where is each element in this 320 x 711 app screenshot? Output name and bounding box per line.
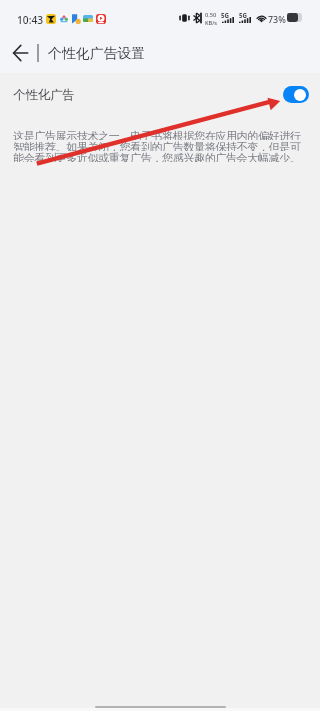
button[interactable]: Back [7, 39, 35, 67]
staticText: 个性化广告 [13, 87, 75, 103]
button[interactable]: Personalized ads switch [283, 86, 309, 103]
staticText: 73% [268, 13, 286, 25]
staticText: 个性化广告设置 [48, 45, 146, 63]
staticText: KB/s [205, 19, 218, 27]
staticText: 智能推荐。如果关闭，您看到的广告数量将保持不变，但是可 [13, 140, 301, 151]
staticText: 能会看到更多近似或重复广告，您感兴趣的广告会大幅减少。 [13, 151, 301, 162]
button[interactable]: 个性化广告 [0, 79, 320, 110]
staticText: 5G [239, 11, 248, 19]
staticText: 10:43 [17, 13, 44, 27]
staticText: 0.50 [205, 11, 217, 19]
staticText: 这是广告展示技术之一，电子书将根据您在应用内的偏好进行 [13, 129, 301, 140]
staticText: 5G [221, 11, 230, 19]
